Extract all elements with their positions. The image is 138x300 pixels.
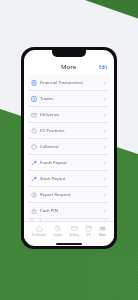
button[interactable]: Cash PIN <box>28 203 110 219</box>
staticText: Financial Transactions <box>40 80 84 86</box>
staticText: Stock Payout <box>40 176 66 182</box>
staticText: Funds Payout <box>40 160 67 166</box>
button[interactable]: Ledger <box>52 224 63 238</box>
button[interactable]: FO Positions <box>28 123 110 139</box>
button[interactable]: Edit <box>98 63 109 71</box>
button[interactable]: Dashboard <box>31 224 47 238</box>
staticText: Holding <box>69 233 79 237</box>
staticText: IPO <box>86 233 91 237</box>
staticText: Cash PIN <box>40 208 58 214</box>
button[interactable]: Stock Payout <box>28 171 110 187</box>
button[interactable]: Trades <box>28 91 110 107</box>
button[interactable]: Collateral <box>28 139 110 155</box>
button[interactable]: IPO <box>84 224 93 238</box>
staticText: Edit <box>99 64 108 70</box>
staticText: More <box>99 233 106 237</box>
staticText: Collateral <box>40 144 59 150</box>
staticText: Trades <box>40 96 54 102</box>
staticText: Ledger <box>53 233 62 237</box>
button[interactable]: Deliveries <box>28 107 110 123</box>
staticText: Logout <box>40 219 54 221</box>
staticText: Report Request <box>40 192 71 198</box>
button[interactable]: Financial Transactions <box>28 75 110 91</box>
button[interactable]: Funds Payout <box>28 155 110 171</box>
staticText: More <box>61 63 77 71</box>
button[interactable]: Report Request <box>28 187 110 203</box>
staticText: FO Positions <box>40 128 65 134</box>
staticText: Deliveries <box>40 112 60 118</box>
button[interactable]: More <box>98 224 107 238</box>
staticText: Dashboard <box>32 233 46 237</box>
button[interactable]: Logout <box>28 219 110 221</box>
button[interactable]: Holding <box>68 224 80 238</box>
